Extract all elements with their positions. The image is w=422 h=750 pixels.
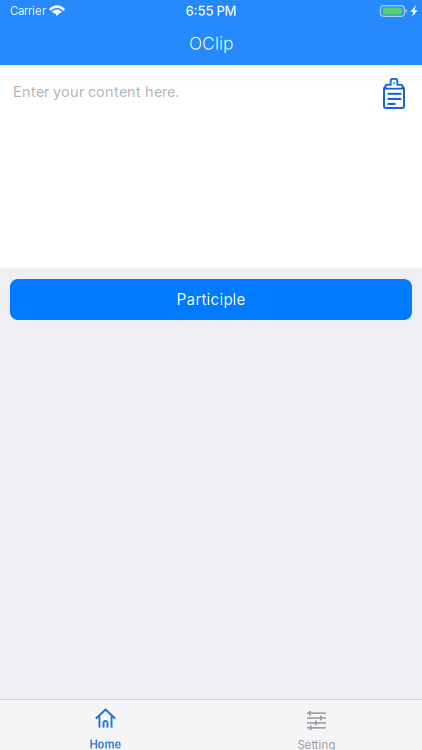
staticText: Participle: [176, 290, 245, 309]
button[interactable]: Setting: [211, 700, 422, 750]
staticText: Setting: [297, 738, 335, 750]
button[interactable]: Participle: [10, 279, 412, 320]
button[interactable]: Home: [0, 700, 211, 750]
staticText: 6:55 PM: [185, 3, 236, 19]
button[interactable]: Paste from clipboard: [383, 78, 405, 109]
staticText: Enter your content here.: [13, 83, 179, 100]
staticText: Carrier: [10, 4, 46, 18]
staticText: Home: [89, 738, 121, 750]
staticText: OClip: [189, 33, 233, 54]
